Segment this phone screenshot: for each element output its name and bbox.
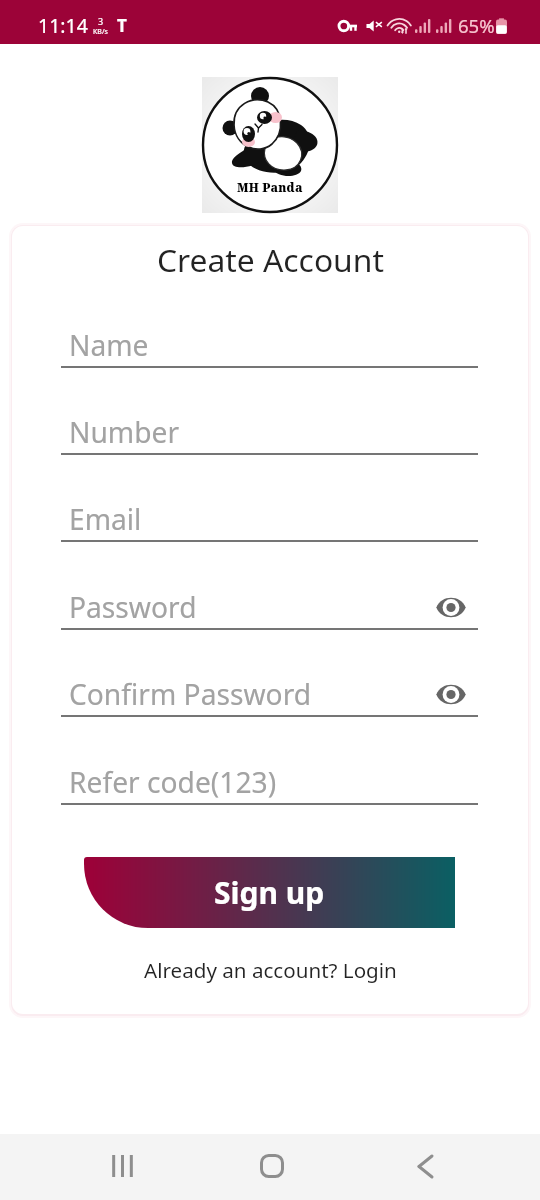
button[interactable]: Show password [426,674,476,714]
staticText: 11:14 [38,12,88,39]
staticText: Confirm Password [69,675,312,713]
staticText: Number [69,413,180,451]
button[interactable]: Show password [426,587,476,627]
staticText: MH Panda [237,179,303,195]
button[interactable]: Name [61,323,478,367]
button[interactable]: Already an account? Login [144,956,397,984]
button[interactable]: Recent apps [100,1144,144,1188]
button[interactable]: Email [61,497,478,541]
staticText: Name [69,326,149,364]
button[interactable]: Number [61,410,478,454]
staticText: Sign up [214,872,325,913]
staticText: Password [69,588,197,626]
button[interactable]: Back [403,1144,447,1188]
button[interactable]: Confirm Password [61,672,478,716]
staticText: T [117,14,127,37]
button[interactable]: Refer code(123) [61,760,478,804]
staticText: Refer code(123) [69,763,277,801]
staticText: 65% [458,13,495,38]
staticText: KB/s [93,27,108,37]
staticText: Create Account [157,238,384,281]
button[interactable]: Sign up [84,857,455,928]
staticText: 3 [98,15,104,27]
button[interactable]: Home [250,1144,294,1188]
staticText: Email [69,500,142,538]
button[interactable]: Password [61,585,478,629]
